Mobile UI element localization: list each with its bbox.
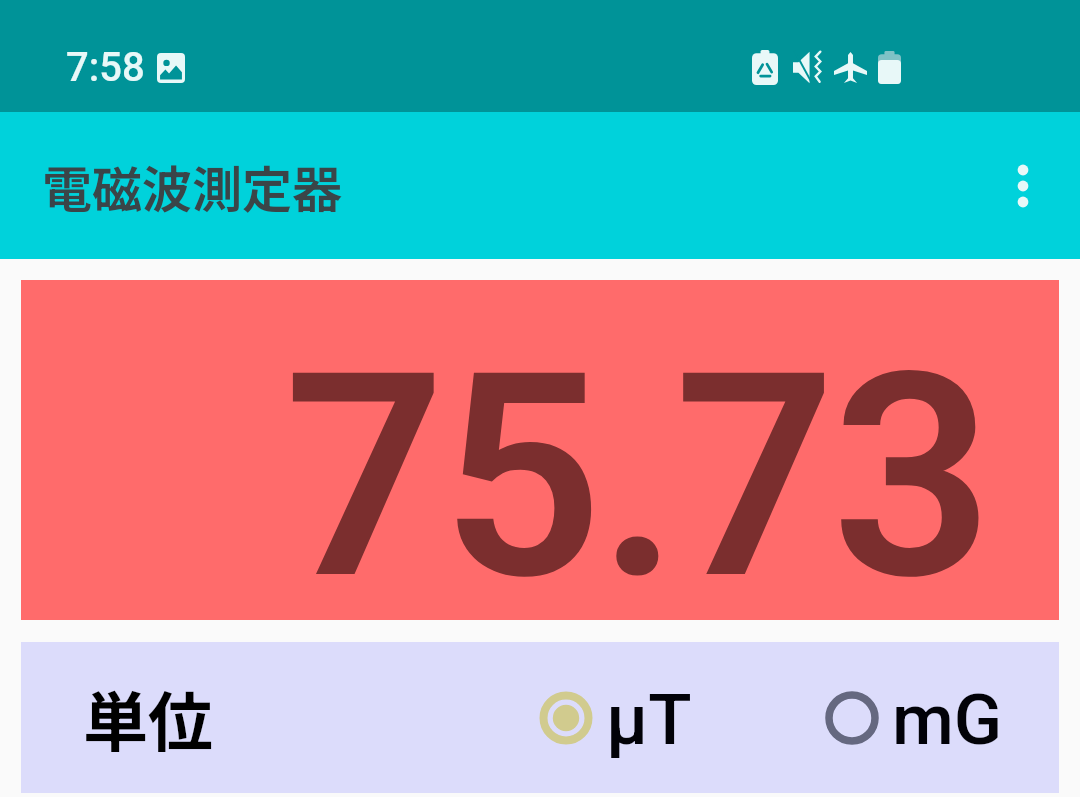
staticText: 単位 bbox=[83, 671, 214, 765]
staticText: mG bbox=[892, 678, 1003, 759]
staticText: 75.73 bbox=[284, 311, 989, 643]
staticText: µT bbox=[606, 678, 692, 759]
staticText: 7:58 bbox=[66, 44, 145, 91]
button[interactable]: µT bbox=[530, 676, 694, 759]
staticText: 電磁波測定器 bbox=[42, 150, 342, 222]
button[interactable]: mG bbox=[816, 676, 1005, 759]
button[interactable]: More options bbox=[983, 146, 1063, 226]
